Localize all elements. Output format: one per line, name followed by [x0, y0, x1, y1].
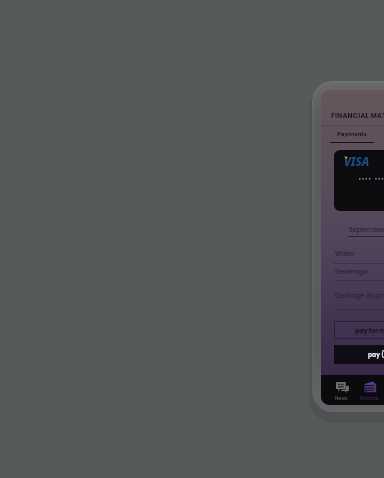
staticText: Water [335, 249, 355, 258]
button[interactable]: Finance [356, 375, 383, 405]
staticText: pay for me [355, 326, 384, 335]
staticText: September [349, 225, 384, 234]
staticText: VISA [344, 154, 370, 170]
staticText: pay (2 870 ₽) [368, 351, 384, 359]
button[interactable]: pay (2 870 ₽) [334, 345, 384, 364]
staticText: News [335, 395, 348, 402]
staticText: Payments [337, 130, 367, 138]
staticText: FINANCIAL MATTERS [331, 111, 384, 120]
staticText: Sewerage [335, 267, 368, 276]
staticText: Garbage disposal [335, 291, 384, 300]
button[interactable]: pay for me [334, 321, 384, 339]
button[interactable]: Payments [330, 126, 374, 142]
button[interactable]: VISA [334, 150, 384, 211]
button[interactable] [321, 243, 384, 258]
button[interactable] [321, 285, 384, 300]
staticText: Finance [360, 395, 379, 402]
button[interactable] [321, 261, 384, 276]
button[interactable]: News [328, 375, 355, 405]
